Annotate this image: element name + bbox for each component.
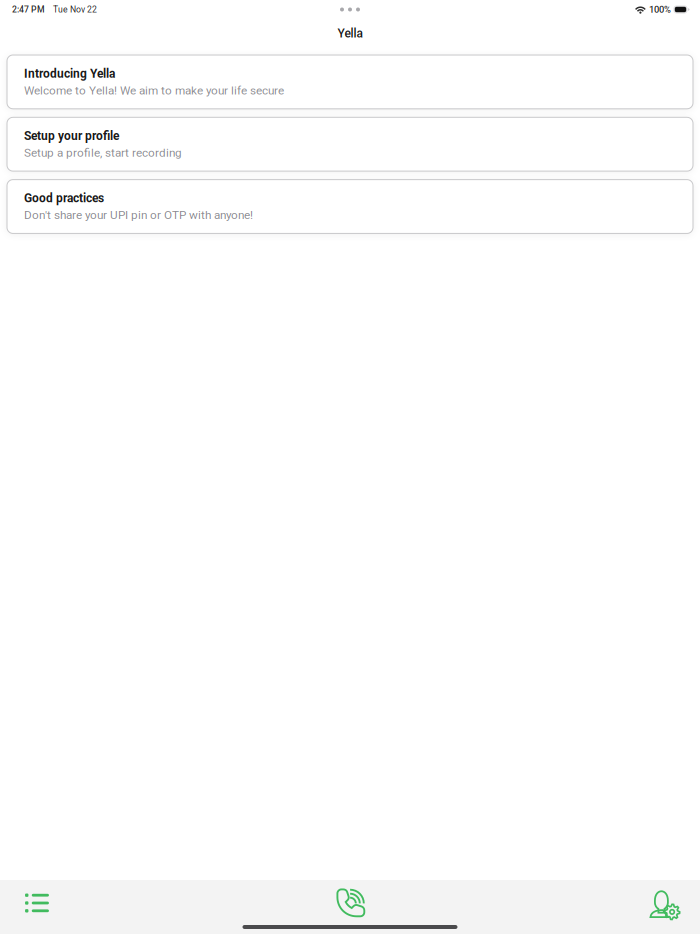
button[interactable]: Call log [15,881,59,925]
button[interactable]: Yella [0,18,700,49]
staticText: Tue Nov 22 [53,4,97,15]
button[interactable]: Profile settings [643,881,687,925]
staticText: Setup your profile [24,129,119,143]
button[interactable]: Dial [329,881,373,925]
staticText: Good practices [24,191,104,205]
staticText: Welcome to Yella! We aim to make your li… [24,84,284,97]
button[interactable]: Good practices [7,180,693,233]
button[interactable]: Introducing Yella [7,55,693,109]
staticText: Yella [337,26,362,41]
staticText: Introducing Yella [24,66,115,81]
staticText: Don't share your UPI pin or OTP with any… [24,208,253,222]
staticText: Setup a profile, start recording [24,146,182,160]
staticText: 2:47 PM [12,4,45,15]
staticText: 100% [649,4,671,15]
button[interactable]: Setup your profile [7,117,693,171]
